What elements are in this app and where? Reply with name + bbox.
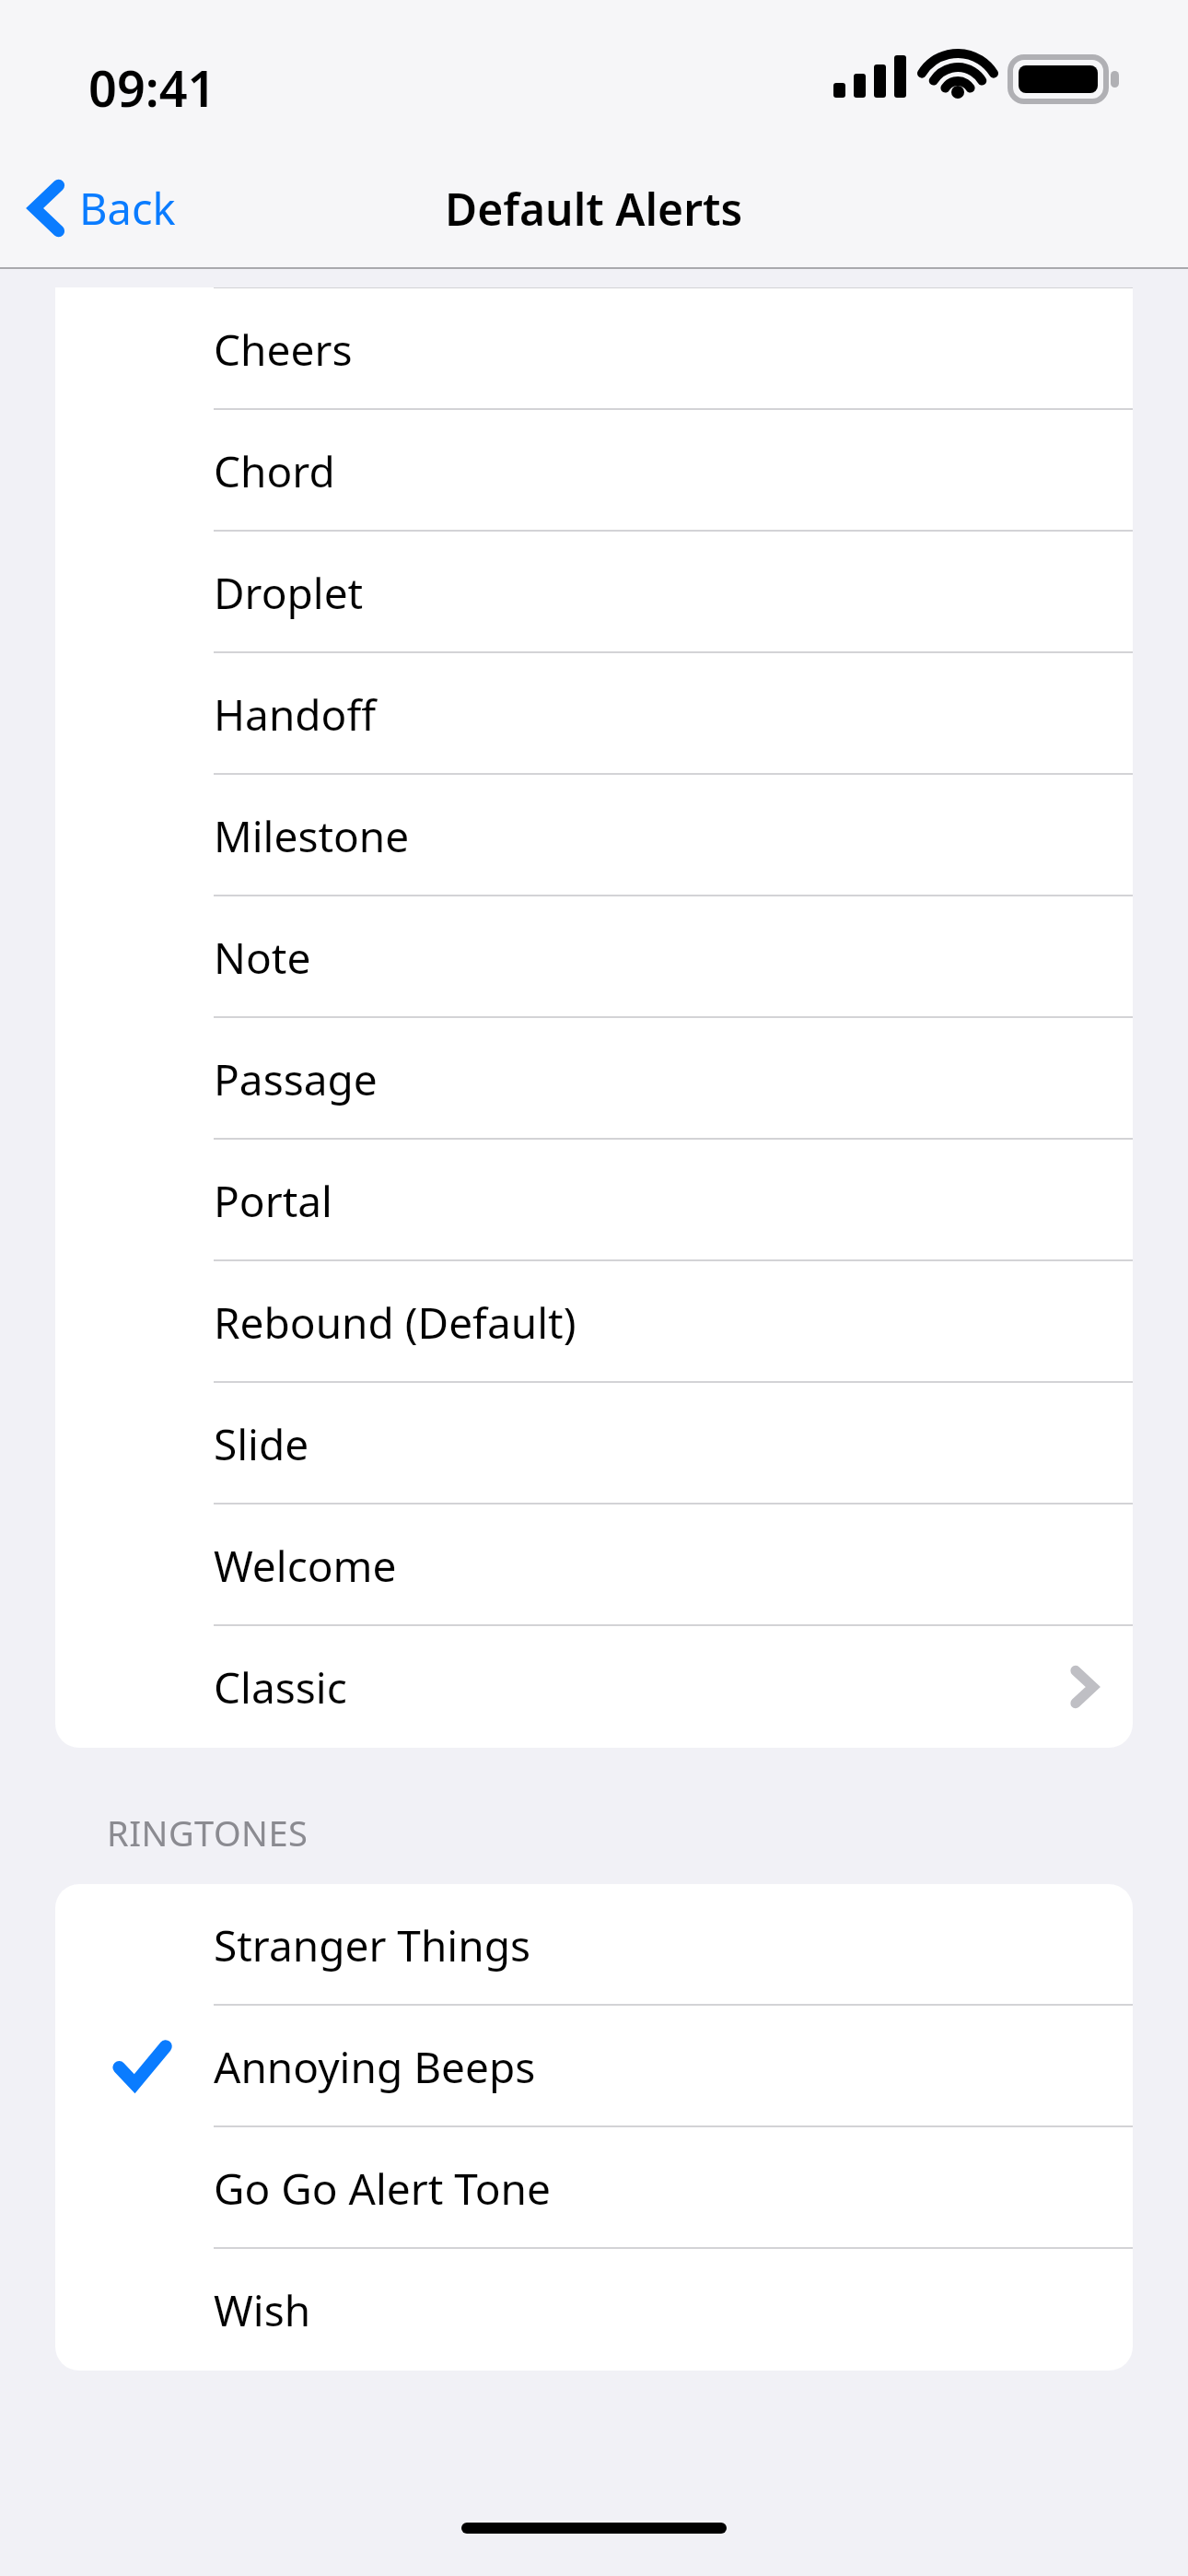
staticText: Handoff [214, 685, 377, 744]
staticText: Chord [214, 442, 335, 500]
button[interactable]: Passage [55, 1018, 1133, 1140]
button[interactable]: Chord [55, 410, 1133, 532]
staticText: Cheers [214, 321, 353, 379]
staticText: Portal [214, 1172, 332, 1230]
staticText: Annoying Beeps [214, 2038, 536, 2096]
staticText: Passage [214, 1050, 378, 1108]
staticText: Default Alerts [445, 179, 743, 239]
staticText: Welcome [214, 1537, 397, 1595]
button[interactable]: Portal [55, 1140, 1133, 1261]
button[interactable]: Wish [55, 2249, 1133, 2371]
staticText: Milestone [214, 807, 410, 865]
button[interactable]: Back [0, 147, 198, 269]
staticText: Note [214, 929, 311, 987]
button[interactable]: Droplet [55, 532, 1133, 653]
staticText: Droplet [214, 564, 364, 622]
staticText: Rebound (Default) [214, 1294, 577, 1352]
staticText: Back [79, 179, 176, 238]
button[interactable]: Welcome [55, 1505, 1133, 1626]
staticText: 09:41 [88, 53, 216, 122]
staticText: Stranger Things [214, 1916, 530, 1974]
button[interactable]: Milestone [55, 775, 1133, 896]
button[interactable]: Stranger Things [55, 1884, 1133, 2006]
button[interactable]: Handoff [55, 653, 1133, 775]
staticText: RINGTONES [107, 1809, 309, 1856]
staticText: Classic [214, 1658, 347, 1716]
button[interactable]: Cheers [55, 288, 1133, 410]
button[interactable]: Slide [55, 1383, 1133, 1505]
staticText: Wish [214, 2281, 311, 2339]
staticText: Slide [214, 1415, 309, 1473]
staticText: Go Go Alert Tone [214, 2160, 551, 2218]
button[interactable]: Go Go Alert Tone [55, 2127, 1133, 2249]
button[interactable]: Note [55, 896, 1133, 1018]
button[interactable]: Rebound (Default) [55, 1261, 1133, 1383]
button[interactable]: Classic [55, 1626, 1133, 1748]
button[interactable]: Annoying Beeps [55, 2006, 1133, 2127]
